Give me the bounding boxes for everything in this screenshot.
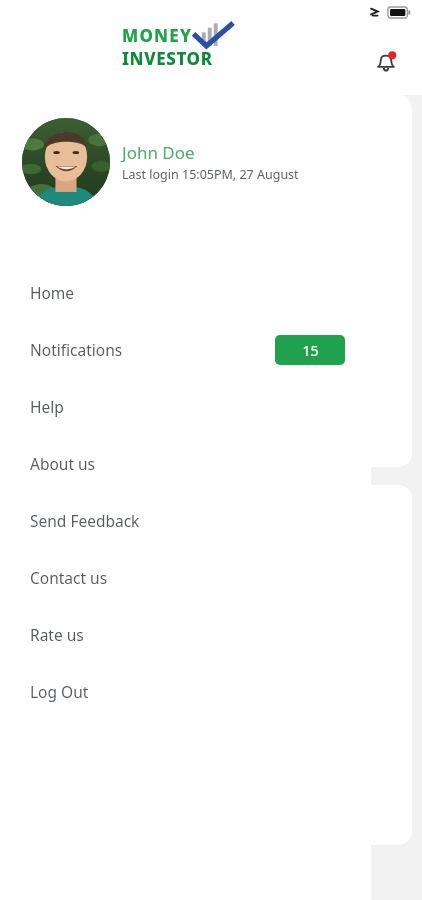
button[interactable]: Contact us bbox=[0, 549, 371, 606]
staticText: Help bbox=[30, 396, 64, 417]
staticText: 15 bbox=[302, 341, 319, 360]
staticText: Home bbox=[30, 282, 75, 303]
staticText: Log Out bbox=[30, 681, 89, 702]
staticText: INVESTOR bbox=[122, 47, 213, 70]
button[interactable]: Send Feedback bbox=[0, 492, 371, 549]
button[interactable]: About us bbox=[0, 435, 371, 492]
staticText: MONEY bbox=[122, 24, 193, 47]
staticText: Notifications bbox=[30, 339, 123, 360]
button[interactable]: Help bbox=[0, 378, 371, 435]
staticText: Contact us bbox=[30, 567, 108, 588]
button[interactable]: Log Out bbox=[0, 663, 371, 720]
staticText: About us bbox=[30, 453, 96, 474]
staticText: Last login 15:05PM, 27 August bbox=[122, 166, 299, 183]
button[interactable]: John Doe bbox=[0, 118, 371, 206]
staticText: John Doe bbox=[122, 141, 195, 164]
button[interactable]: Home bbox=[0, 264, 371, 321]
staticText: Rate us bbox=[30, 624, 84, 645]
button[interactable]: Notifications bbox=[368, 44, 404, 80]
button[interactable]: Rate us bbox=[0, 606, 371, 663]
button[interactable]: Notifications bbox=[0, 321, 371, 378]
staticText: Send Feedback bbox=[30, 510, 140, 531]
